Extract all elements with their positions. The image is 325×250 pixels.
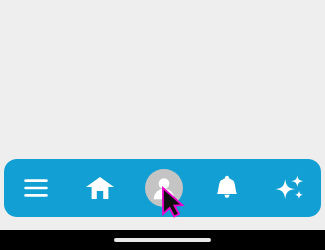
button[interactable]: Highlights bbox=[258, 159, 321, 217]
button[interactable]: Notifications bbox=[195, 159, 258, 217]
button[interactable]: Menu bbox=[4, 159, 68, 217]
button[interactable]: Home bbox=[68, 159, 132, 217]
button[interactable]: Profile bbox=[132, 159, 195, 217]
